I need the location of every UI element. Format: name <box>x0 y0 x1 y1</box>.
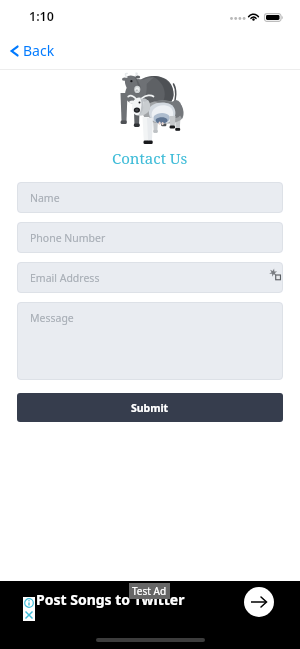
button[interactable]: Ad info <box>23 597 35 621</box>
staticText: Post Songs to Twitter <box>36 590 185 609</box>
staticText: Submit <box>131 401 169 415</box>
staticText: Contact Us <box>112 148 188 168</box>
button[interactable]: Back <box>0 32 67 69</box>
staticText: 1:10 <box>29 8 54 25</box>
button[interactable]: Open ad <box>244 587 274 617</box>
staticText: Email Address <box>30 271 100 285</box>
button[interactable]: Name <box>17 182 283 213</box>
button[interactable]: Email Address <box>17 262 283 293</box>
staticText: Phone Number <box>30 231 106 245</box>
button[interactable]: Submit <box>17 393 283 422</box>
staticText: Test Ad <box>132 584 167 598</box>
staticText: Back <box>23 41 55 60</box>
staticText: Message <box>30 311 74 325</box>
staticText: Name <box>30 191 60 205</box>
button[interactable]: Message <box>17 302 283 380</box>
button[interactable]: Phone Number <box>17 222 283 253</box>
